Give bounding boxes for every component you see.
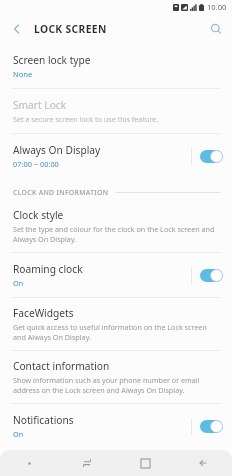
button[interactable]: Smart Lock [0,89,232,133]
staticText: Clock style [13,208,64,222]
staticText: Notifications [13,413,74,427]
button[interactable]: Hide navigation bar [0,450,58,476]
staticText: Smart Lock [13,98,67,112]
button[interactable]: FaceWidgets [0,298,232,350]
button[interactable]: Back [174,450,232,476]
staticText: Set the type and colour for the clock on… [13,224,218,244]
button[interactable]: Always On Display [0,134,232,178]
staticText: On [13,278,24,288]
button[interactable]: Navigate up [0,14,34,44]
button[interactable]: Notifications [0,404,232,448]
button[interactable]: Roaming clock switch [200,269,223,282]
button[interactable]: Search [200,14,232,44]
staticText: LOCK SCREEN [34,22,107,36]
staticText: CLOCK AND INFORMATION [13,188,109,197]
button[interactable]: Clock style [0,201,232,252]
staticText: Show information such as your phone numb… [13,375,218,395]
staticText: 10.00 [207,2,227,12]
button[interactable]: Always On Display switch [200,150,223,163]
staticText: Roaming clock [13,262,83,276]
button[interactable]: Notifications switch [200,420,223,433]
staticText: On [13,429,24,439]
staticText: Get quick access to useful information o… [13,322,218,342]
button[interactable]: Home [116,450,174,476]
button[interactable]: Recent apps [58,450,116,476]
staticText: Always On Display [13,143,101,157]
staticText: 07:00 ~ 00:00 [13,159,59,169]
button[interactable]: Contact information [0,351,232,403]
button[interactable]: Screen lock type [0,44,232,88]
staticText: FaceWidgets [13,306,74,320]
staticText: None [13,69,33,79]
staticText: Screen lock type [13,53,91,67]
staticText: Set a secure screen lock to use this fea… [13,114,159,124]
button[interactable]: Roaming clock [0,253,232,297]
staticText: Contact information [13,359,110,373]
